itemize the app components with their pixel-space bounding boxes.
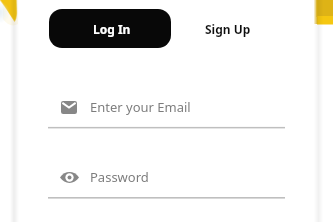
- staticText: Enter your Email: [90, 98, 191, 116]
- other: Show password: [60, 169, 79, 186]
- button[interactable]: Email: [48, 98, 285, 128]
- button[interactable]: Show password: [48, 168, 285, 198]
- button[interactable]: Log In: [49, 9, 171, 48]
- staticText: Password: [90, 168, 149, 186]
- staticText: Sign Up: [205, 21, 251, 37]
- other: Email: [61, 101, 77, 114]
- button[interactable]: Sign Up: [191, 9, 264, 48]
- staticText: Log In: [93, 21, 131, 37]
